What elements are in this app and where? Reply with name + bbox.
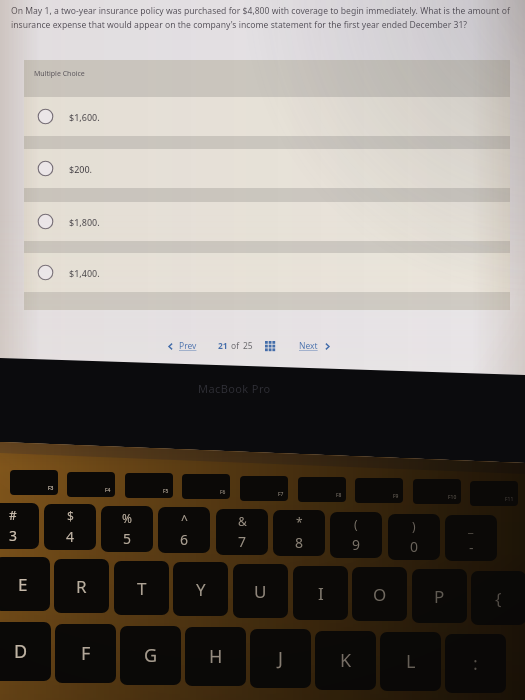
button[interactable]: $1,400. [24,253,510,292]
button[interactable]: Key J [250,629,311,688]
button[interactable]: Key U [233,564,288,618]
button[interactable]: Key F7 [240,476,288,501]
staticText: 8 [295,533,304,552]
staticText: F9 [393,493,399,500]
button[interactable]: Next [299,340,332,352]
staticText: F3 [48,485,54,492]
button[interactable]: Key H [185,627,246,686]
button[interactable]: Key 8 [273,510,325,556]
staticText: Next [299,340,318,352]
staticText: I [318,582,324,605]
staticText: $1,400. [69,267,100,279]
button[interactable]: $1,800. [24,202,510,241]
staticText: of [231,340,240,352]
staticText: ) [412,518,416,534]
button[interactable]: Key F10 [413,479,461,504]
button[interactable]: Key 7 [216,509,268,555]
staticText: % [122,510,132,526]
button[interactable]: Key F11 [470,481,518,506]
staticText: 9 [352,535,361,554]
staticText: # [9,507,17,523]
staticText: F10 [448,494,457,501]
staticText: H [209,644,223,669]
staticText: ( [354,516,358,532]
button[interactable]: Key : [445,634,506,693]
button[interactable]: Key 4 [44,504,96,550]
button[interactable]: Key E [0,557,50,611]
staticText: F11 [505,496,514,503]
staticText: - [469,538,474,557]
staticText: O [373,583,387,606]
staticText: Y [196,578,206,601]
staticText: E [18,573,28,596]
staticText: * [296,514,303,530]
staticText: 3 [9,526,18,545]
staticText: J [278,646,283,671]
staticText: _ [468,519,474,535]
button[interactable]: Key F5 [125,473,173,498]
staticText: P [434,585,445,608]
staticText: F8 [336,492,342,499]
staticText: $1,800. [69,216,100,228]
staticText: T [137,577,147,600]
button[interactable]: Key { [471,571,525,625]
staticText: F4 [105,487,111,494]
staticText: F6 [220,489,226,496]
staticText: R [76,575,87,598]
button[interactable]: Key F6 [182,474,230,499]
staticText: 5 [123,529,132,548]
staticText: ^ [181,511,188,527]
staticText: U [254,580,267,603]
staticText: 4 [66,527,75,546]
button[interactable]: Key O [352,567,407,621]
staticText: insurance expense that would appear on t… [11,19,468,31]
staticText: Prev [179,340,197,352]
staticText: Multiple Choice [34,69,85,79]
staticText: 21 [218,340,228,352]
button[interactable]: Key F [55,624,116,683]
button[interactable]: Key 0 [388,514,440,560]
staticText: & [238,513,247,529]
button[interactable]: Key L [380,632,441,691]
staticText: 7 [238,532,247,551]
staticText: { [495,587,502,610]
staticText: D [14,639,28,664]
button[interactable]: Key R [54,559,109,613]
button[interactable]: Key - [445,515,497,561]
button[interactable]: Key K [315,631,376,690]
button[interactable]: Key I [293,566,348,620]
staticText: 25 [243,340,253,352]
staticText: F [81,641,91,666]
staticText: 6 [180,530,189,549]
staticText: $ [67,508,74,524]
button[interactable]: Key D [0,622,51,681]
button[interactable]: Key Y [173,562,228,616]
staticText: On May 1, a two-year insurance policy wa… [11,5,510,17]
button[interactable]: Key F8 [298,477,346,502]
staticText: K [340,648,352,673]
button[interactable]: Key 5 [101,506,153,552]
button[interactable]: Key F9 [355,478,403,503]
button[interactable]: Key 6 [158,507,210,553]
button[interactable]: Key P [412,569,467,623]
button[interactable]: $1,600. [24,97,510,136]
button[interactable]: Key 9 [330,512,382,558]
button[interactable]: Key 3 [0,503,39,549]
button[interactable]: Prev [166,340,197,352]
button[interactable]: Key F4 [67,472,115,497]
staticText: F5 [163,488,169,495]
staticText: L [406,649,416,674]
button[interactable]: Key G [120,626,181,685]
button[interactable]: $200. [24,149,510,188]
staticText: G [144,643,158,668]
staticText: F7 [278,491,284,498]
button[interactable]: Key T [114,561,169,615]
staticText: $1,600. [69,111,100,123]
staticText: 0 [410,537,419,556]
button[interactable]: Key F3 [10,470,58,495]
button[interactable]: Question list [265,341,275,351]
staticText: $200. [69,163,93,175]
staticText: MacBook Pro [198,381,271,396]
staticText: : [473,651,478,676]
